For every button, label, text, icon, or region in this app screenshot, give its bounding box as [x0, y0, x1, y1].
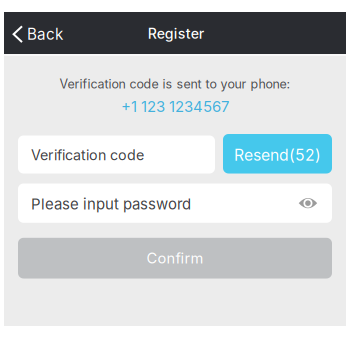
- staticText: Back: [27, 25, 63, 43]
- staticText: Verification code is sent to your phone:: [59, 76, 290, 92]
- button[interactable]: Resend(52): [223, 134, 332, 173]
- button[interactable]: Verification code: [18, 135, 215, 173]
- staticText: Please input password: [31, 195, 191, 213]
- button[interactable]: Show password: [299, 197, 317, 209]
- staticText: Verification code: [31, 146, 144, 164]
- button[interactable]: Please input password: [18, 183, 332, 223]
- staticText: +1 123 1234567: [121, 97, 229, 116]
- staticText: Confirm: [146, 249, 203, 267]
- button[interactable]: Back: [4, 12, 114, 54]
- button[interactable]: Confirm: [18, 238, 332, 278]
- staticText: Resend(52): [234, 145, 321, 164]
- staticText: Register: [148, 25, 204, 42]
